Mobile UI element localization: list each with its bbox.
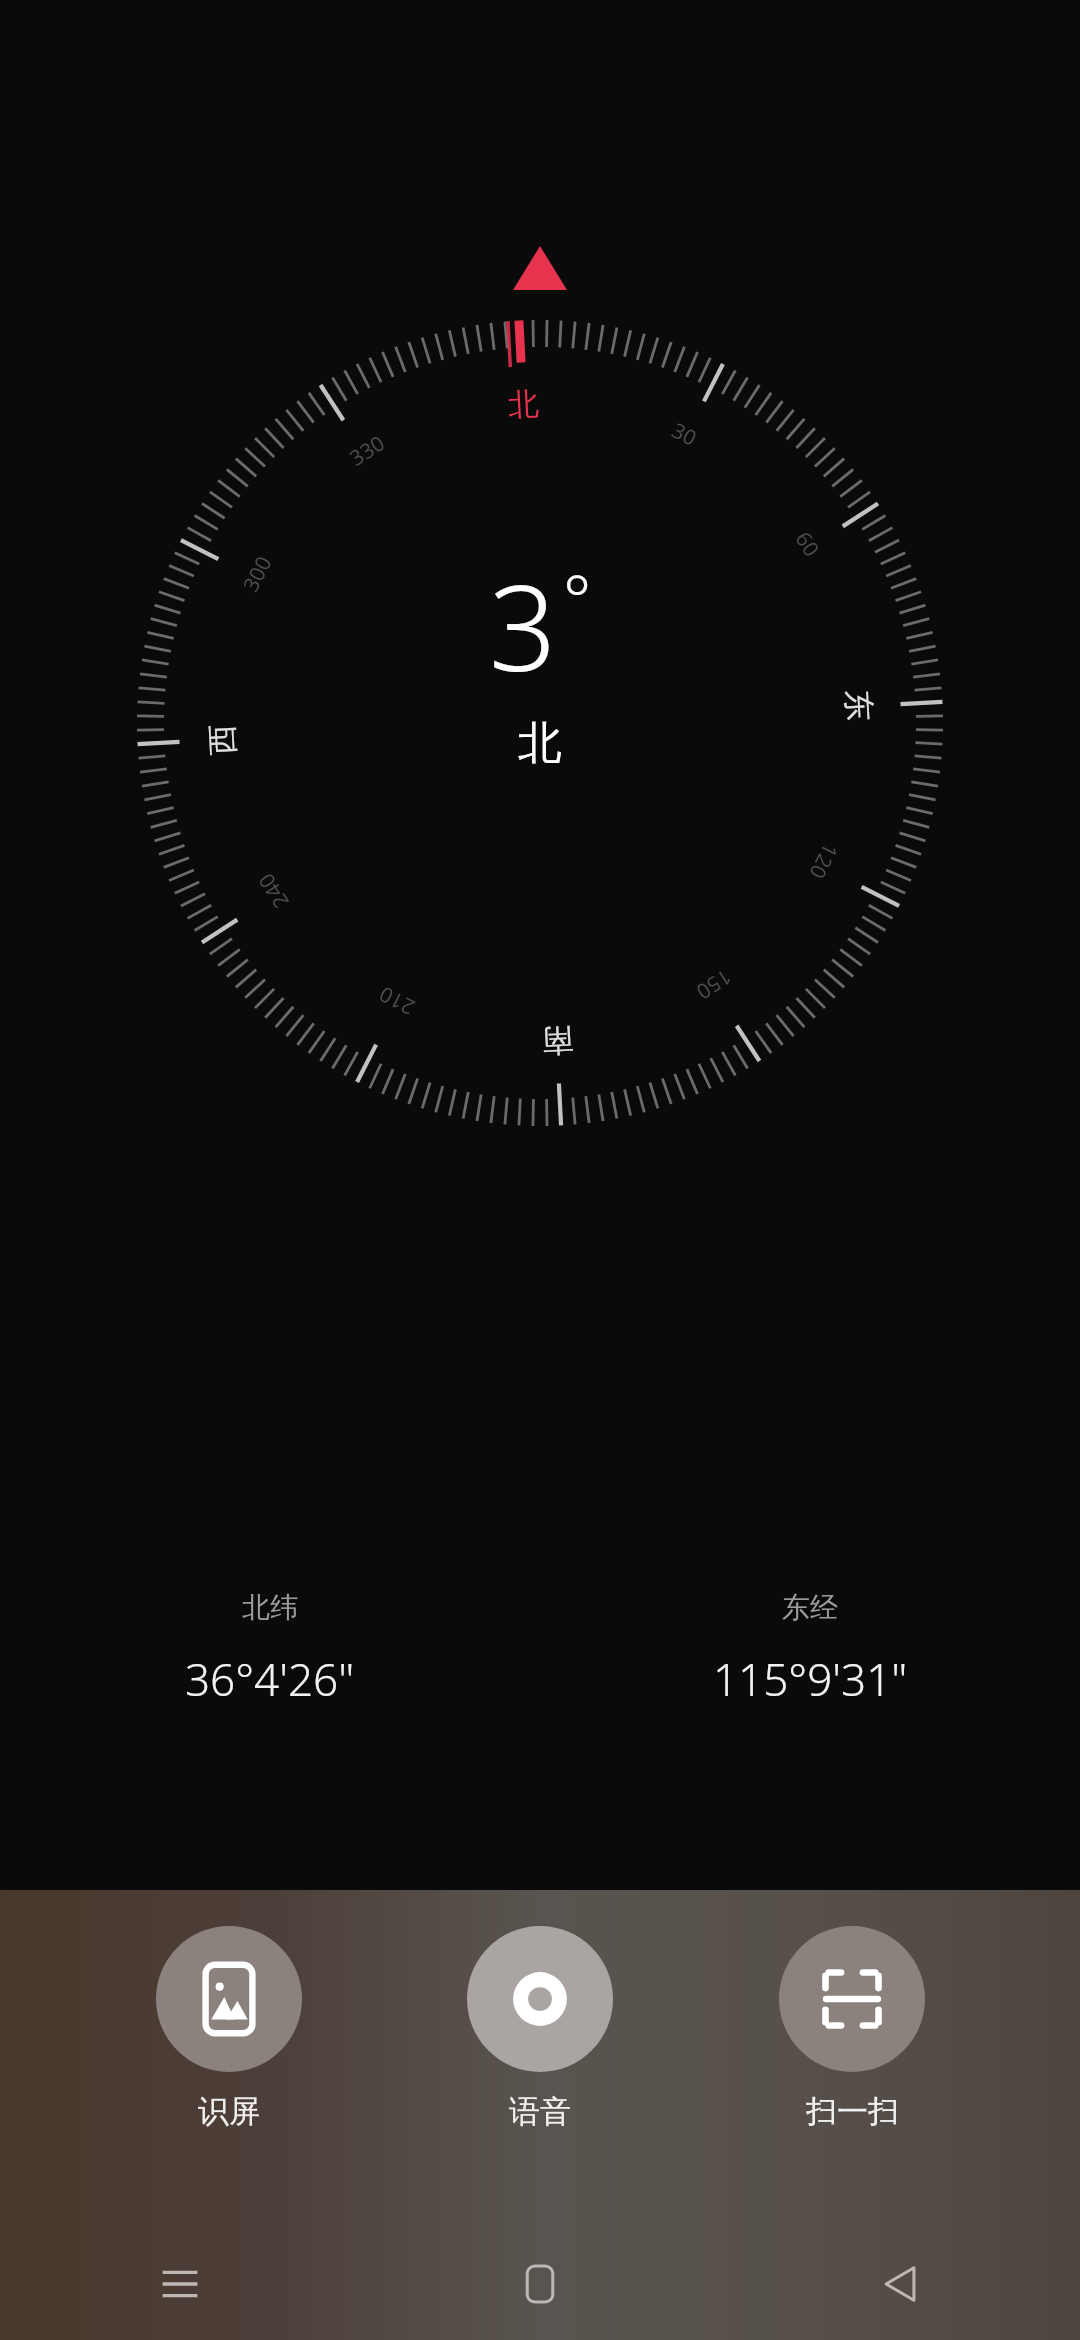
button[interactable]: Scan — [769, 1926, 935, 2131]
staticText: 3 — [489, 545, 557, 706]
staticText: 60 — [788, 526, 826, 563]
button[interactable]: Screen recognition — [146, 1926, 312, 2131]
button[interactable]: Voice assistant — [457, 1926, 623, 2131]
staticText: 北纬 — [242, 1590, 298, 1625]
staticText: 北 — [518, 716, 562, 771]
button[interactable]: Back — [720, 2228, 1080, 2340]
staticText: 北 — [507, 384, 540, 425]
staticText: 语音 — [509, 2092, 571, 2131]
staticText: 东经 — [782, 1590, 838, 1625]
staticText: 115°9'31" — [713, 1649, 908, 1709]
staticText: 210 — [373, 979, 419, 1022]
staticText: 南 — [541, 1020, 574, 1061]
staticText: 240 — [251, 867, 296, 914]
staticText: 330 — [344, 428, 391, 473]
button[interactable]: Home — [360, 2228, 720, 2340]
staticText: 30 — [667, 416, 702, 453]
staticText: 扫一扫 — [806, 2092, 899, 2131]
staticText: 识屏 — [198, 2092, 260, 2131]
staticText: 150 — [690, 962, 737, 1007]
staticText: 西 — [202, 723, 243, 756]
staticText: 36°4'26" — [185, 1649, 355, 1709]
button[interactable]: Recent apps — [0, 2228, 360, 2340]
staticText: 120 — [802, 838, 845, 884]
staticText: 300 — [236, 550, 279, 596]
staticText: ° — [563, 553, 592, 643]
staticText: 东 — [838, 689, 879, 722]
